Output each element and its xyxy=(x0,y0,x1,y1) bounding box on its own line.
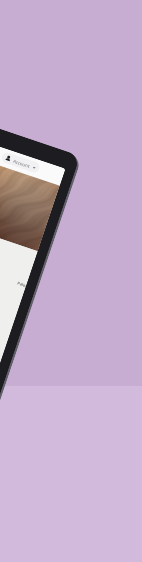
staticText: Account xyxy=(12,158,31,169)
staticText: Palomino xyxy=(17,280,27,288)
button[interactable]: Account xyxy=(4,154,37,171)
